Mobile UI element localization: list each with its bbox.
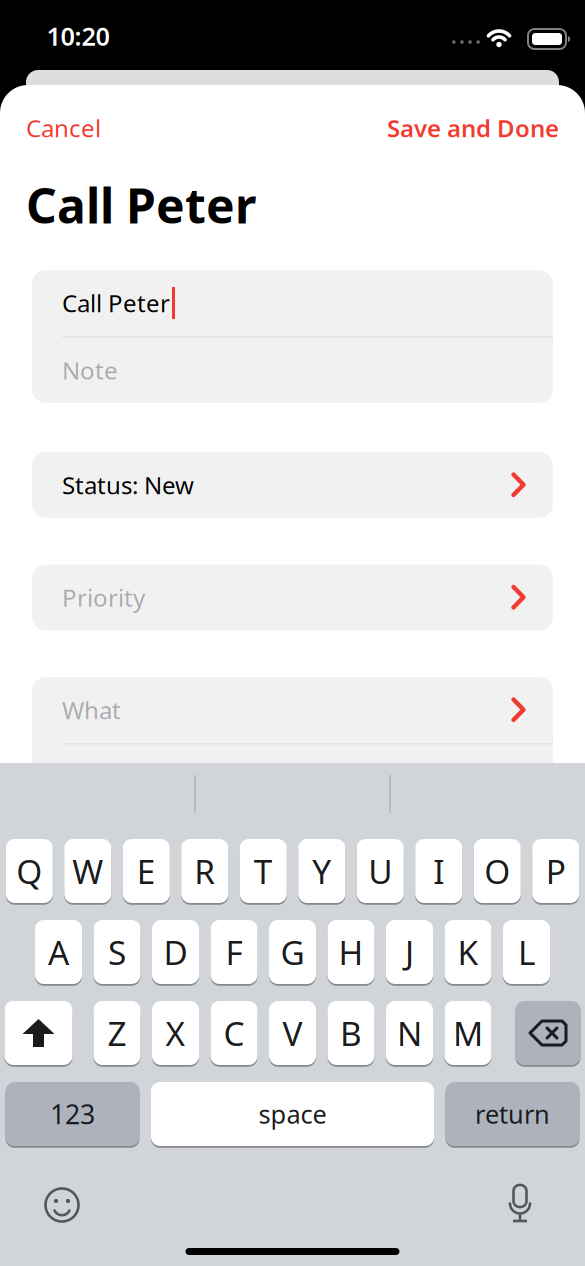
button[interactable]: Dictate <box>508 1185 532 1223</box>
staticText: Y <box>312 849 331 893</box>
button[interactable]: return <box>445 1082 579 1146</box>
staticText: T <box>254 849 273 893</box>
staticText: Call Peter <box>26 173 256 237</box>
staticText: A <box>48 930 69 974</box>
staticText: Save and Done <box>387 112 559 144</box>
staticText: F <box>225 930 242 974</box>
button[interactable]: Y <box>298 839 345 903</box>
button[interactable]: T <box>240 839 287 903</box>
button[interactable]: E <box>123 839 170 903</box>
button[interactable]: X <box>152 1001 199 1065</box>
staticText: L <box>518 930 535 974</box>
button[interactable]: S <box>93 920 140 984</box>
button[interactable]: P <box>532 839 579 903</box>
button[interactable]: Save and Done <box>387 112 559 144</box>
staticText: H <box>338 930 363 974</box>
staticText: 123 <box>50 1096 95 1132</box>
button[interactable]: L <box>503 920 550 984</box>
button[interactable]: Cancel <box>26 112 101 144</box>
button[interactable]: G <box>269 920 316 984</box>
staticText: N <box>397 1011 422 1055</box>
button[interactable]: R <box>181 839 228 903</box>
button[interactable]: B <box>327 1001 374 1065</box>
staticText: What <box>62 694 121 726</box>
button[interactable]: N <box>386 1001 433 1065</box>
button[interactable]: K <box>444 920 491 984</box>
button[interactable]: Priority <box>32 564 553 630</box>
staticText: Z <box>107 1011 126 1055</box>
staticText: J <box>405 930 414 974</box>
button[interactable]: H <box>327 920 374 984</box>
staticText: V <box>282 1011 302 1055</box>
staticText: return <box>475 1097 550 1131</box>
staticText: Status: New <box>62 469 194 501</box>
staticText: U <box>368 849 392 893</box>
button[interactable]: Z <box>93 1001 140 1065</box>
staticText: Call Peter <box>62 287 170 319</box>
staticText: W <box>72 849 103 893</box>
staticText: Note <box>62 354 118 386</box>
button[interactable]: Emoji <box>44 1187 80 1223</box>
button[interactable]: Status: New <box>32 452 553 518</box>
staticText: P <box>546 849 566 893</box>
staticText: C <box>223 1011 244 1055</box>
button[interactable]: U <box>357 839 404 903</box>
button[interactable]: Shift <box>4 1001 72 1065</box>
button[interactable]: space <box>151 1082 434 1146</box>
button[interactable]: D <box>152 920 199 984</box>
button[interactable]: W <box>64 839 111 903</box>
staticText: S <box>108 930 126 974</box>
staticText: Priority <box>62 582 145 613</box>
button[interactable]: Call Peter <box>32 270 553 336</box>
button[interactable]: Note <box>32 337 553 403</box>
button[interactable]: O <box>474 839 521 903</box>
button[interactable]: C <box>210 1001 257 1065</box>
button[interactable]: Delete <box>515 1001 580 1065</box>
button[interactable]: I <box>415 839 462 903</box>
button[interactable]: What <box>32 677 553 743</box>
staticText: space <box>258 1097 326 1131</box>
staticText: Cancel <box>26 112 101 144</box>
staticText: Q <box>16 849 42 893</box>
button[interactable]: F <box>210 920 257 984</box>
button[interactable]: V <box>269 1001 316 1065</box>
staticText: R <box>194 849 215 893</box>
staticText: M <box>453 1011 483 1055</box>
button[interactable]: Q <box>6 839 53 903</box>
staticText: X <box>165 1011 185 1055</box>
staticText: B <box>340 1011 362 1055</box>
staticText: E <box>137 849 156 893</box>
staticText: K <box>457 930 478 974</box>
button[interactable]: 123 <box>5 1082 139 1146</box>
button[interactable]: M <box>444 1001 491 1065</box>
staticText: I <box>433 849 444 893</box>
staticText: O <box>484 849 510 893</box>
button[interactable]: A <box>35 920 82 984</box>
staticText: G <box>280 930 304 974</box>
staticText: D <box>163 930 187 974</box>
staticText: 10:20 <box>46 19 109 53</box>
button[interactable]: J <box>386 920 433 984</box>
